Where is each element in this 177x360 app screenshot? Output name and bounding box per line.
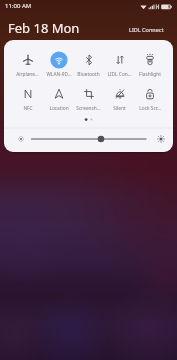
staticText: WLAN-9D… (46, 71, 72, 78)
button[interactable] (73, 85, 104, 103)
staticText: Bluetooth (77, 71, 100, 78)
staticText: Feb 18 Mon (8, 19, 80, 37)
staticText: Airplane… (16, 71, 39, 78)
button[interactable] (43, 85, 74, 103)
button[interactable] (12, 85, 43, 103)
staticText: LIDL Connect (129, 26, 164, 33)
staticText: LIDL Con… (107, 71, 132, 78)
button[interactable] (43, 51, 74, 69)
button[interactable] (73, 51, 104, 69)
button[interactable] (12, 51, 43, 69)
staticText: Lock Scr… (139, 105, 161, 112)
staticText: Silent (113, 105, 126, 112)
staticText: NFC (23, 105, 33, 112)
staticText: Flashlight (139, 71, 161, 78)
staticText: Screensh… (76, 105, 101, 112)
button[interactable] (134, 51, 165, 69)
button[interactable] (104, 51, 135, 69)
staticText: 11:00 AM (5, 2, 32, 10)
button[interactable] (104, 85, 135, 103)
staticText: Location (49, 105, 69, 112)
button[interactable] (134, 85, 165, 103)
